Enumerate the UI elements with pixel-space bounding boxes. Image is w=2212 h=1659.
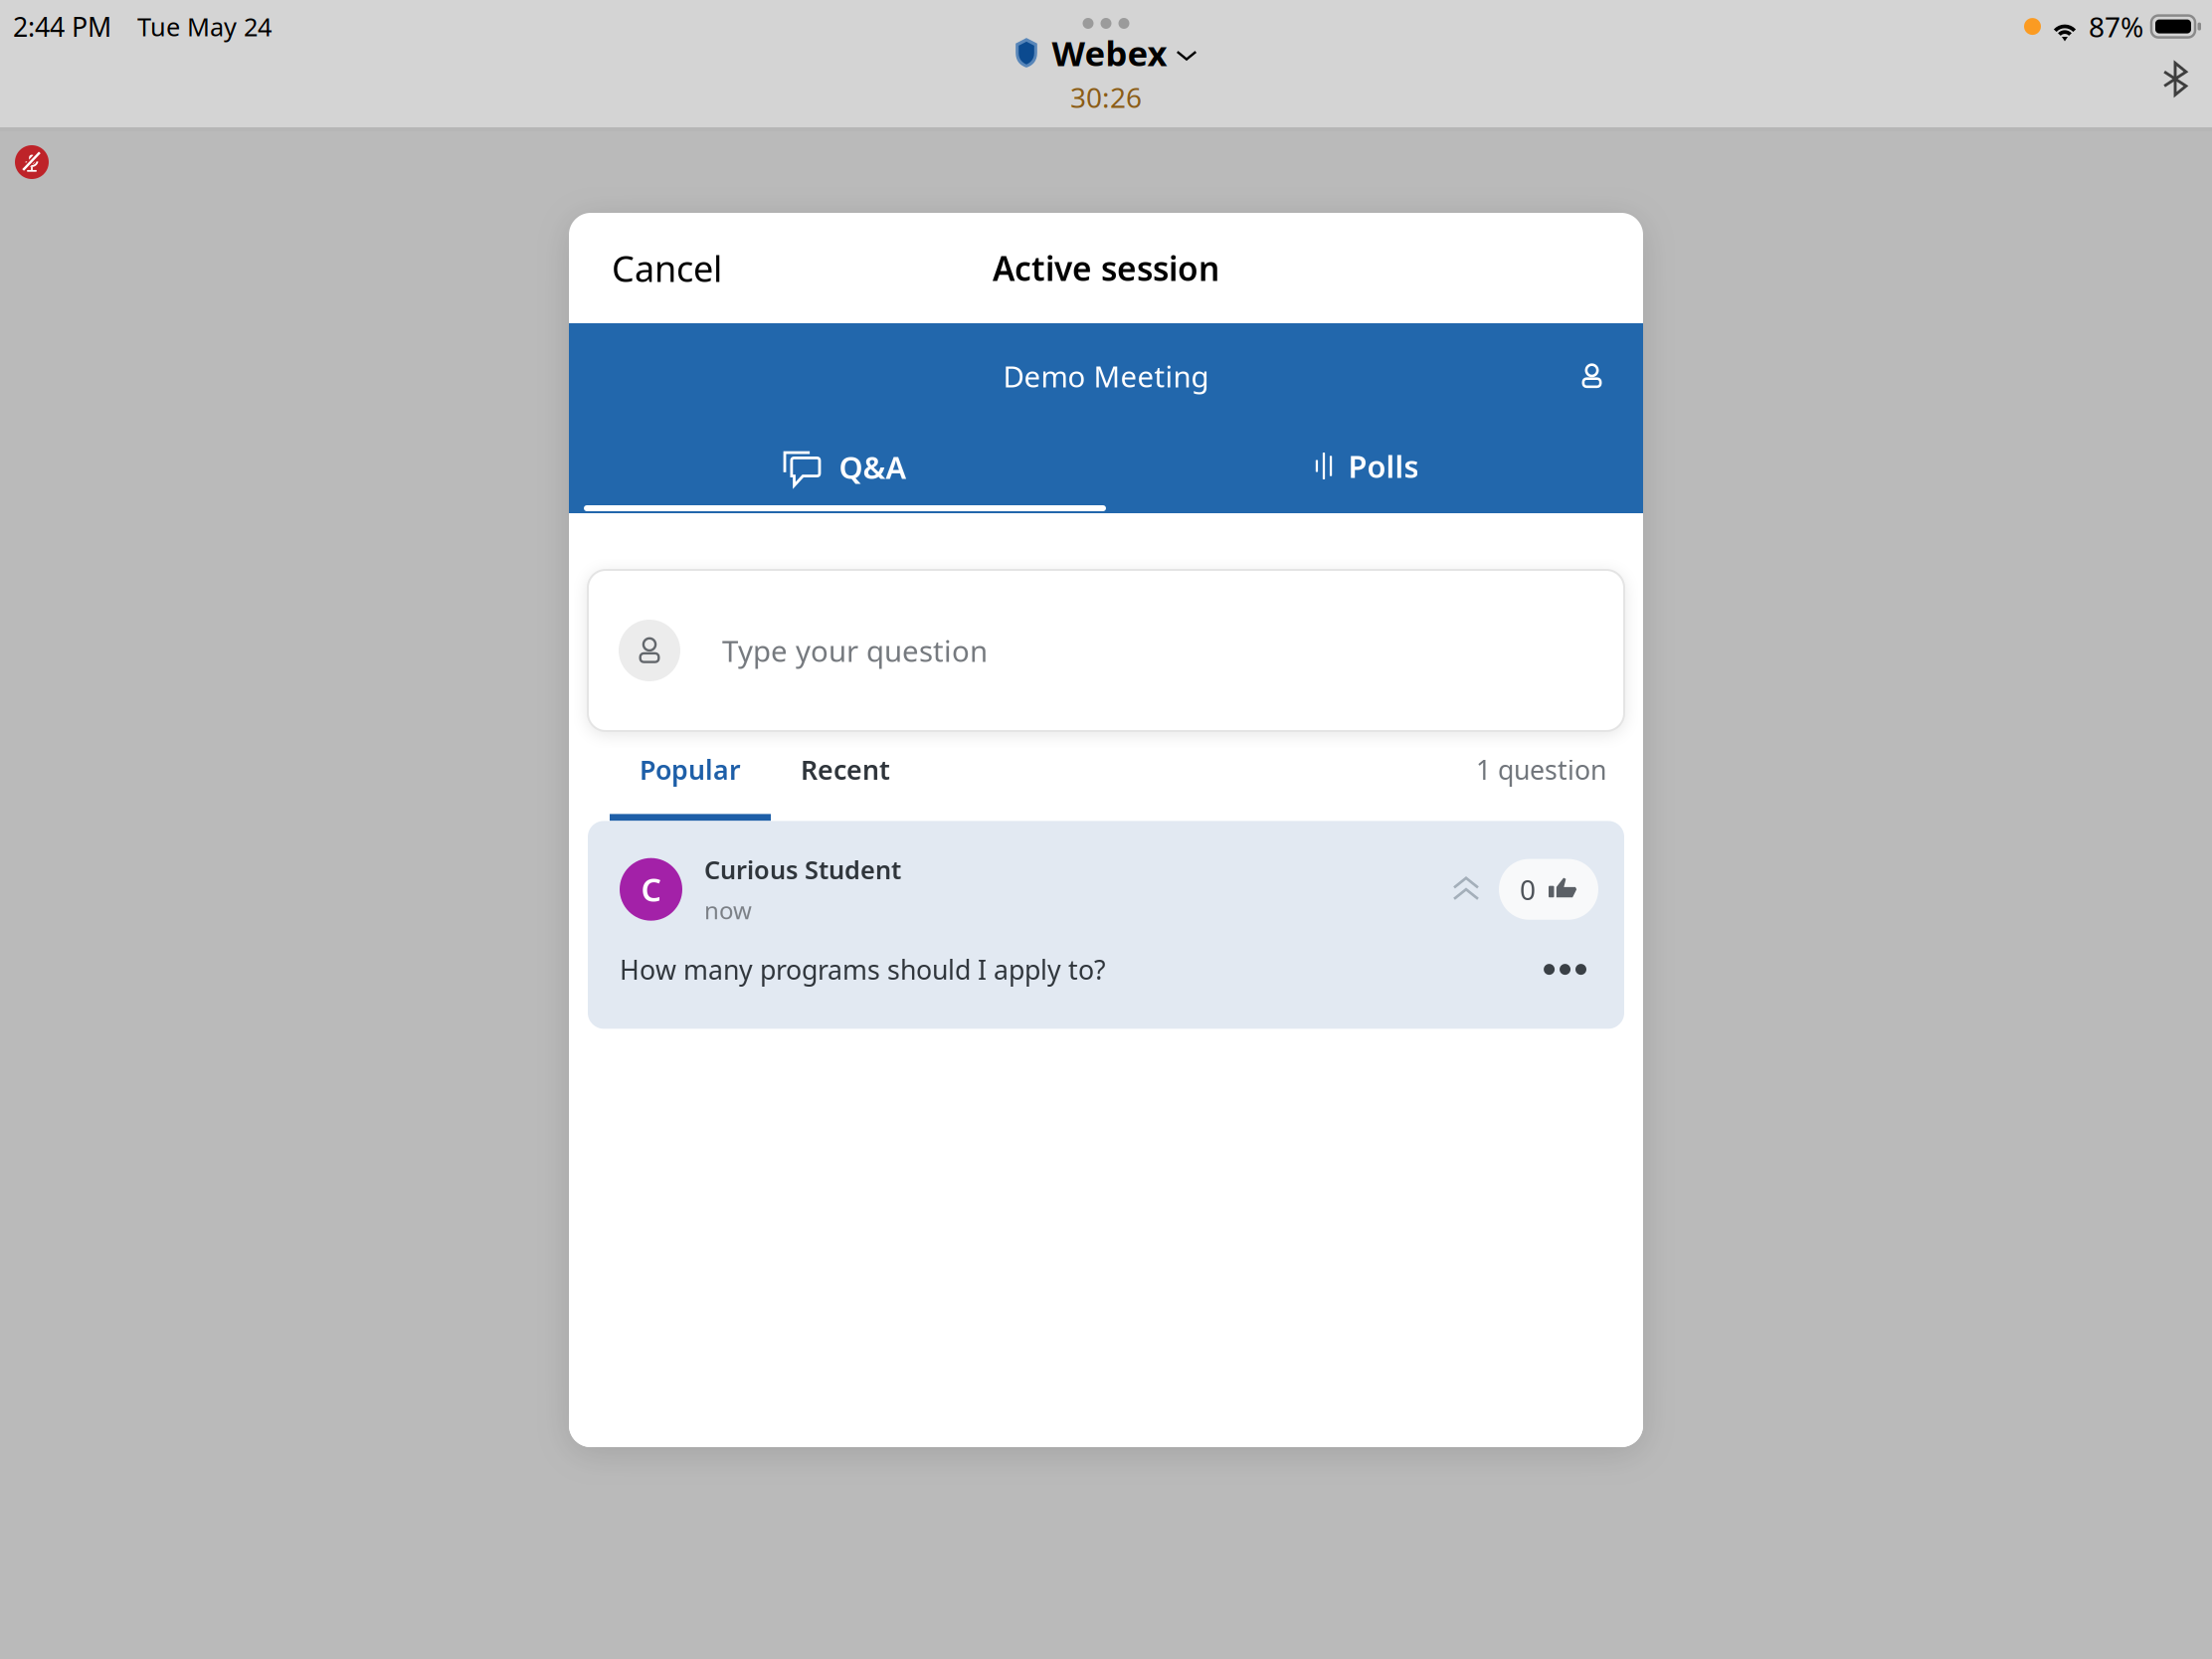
button[interactable]: More options <box>1532 952 1598 987</box>
staticText: Type your question <box>722 631 988 670</box>
staticText: Active session <box>993 246 1219 290</box>
button[interactable]: Upvote <box>1499 859 1598 920</box>
staticText: 30:26 <box>1070 79 1142 116</box>
button[interactable]: Type your question <box>588 570 1624 731</box>
button[interactable]: Cancel <box>596 230 738 306</box>
staticText: Webex <box>1052 30 1167 76</box>
button[interactable]: Recent <box>771 752 920 821</box>
staticText: Demo Meeting <box>1003 357 1209 395</box>
staticText: Curious Student <box>704 853 901 886</box>
staticText: 0 <box>1520 871 1536 908</box>
staticText: 1 question <box>1476 752 1606 787</box>
staticText: Cancel <box>612 244 722 292</box>
button[interactable]: Q&A <box>584 429 1106 513</box>
staticText: 87% <box>2089 8 2143 45</box>
button[interactable]: Polls <box>1106 429 1628 513</box>
staticText: 2:44 PM <box>13 9 111 44</box>
button[interactable]: Participants <box>1567 351 1617 401</box>
button[interactable]: Popular <box>610 752 771 814</box>
staticText: Q&A <box>839 447 907 487</box>
staticText: now <box>704 894 752 926</box>
staticText: C <box>641 868 661 910</box>
staticText: Polls <box>1348 446 1419 486</box>
staticText: How many programs should I apply to? <box>620 952 1106 987</box>
staticText: Tue May 24 <box>137 10 272 43</box>
staticText: Popular <box>640 752 741 787</box>
staticText: Recent <box>801 752 890 787</box>
